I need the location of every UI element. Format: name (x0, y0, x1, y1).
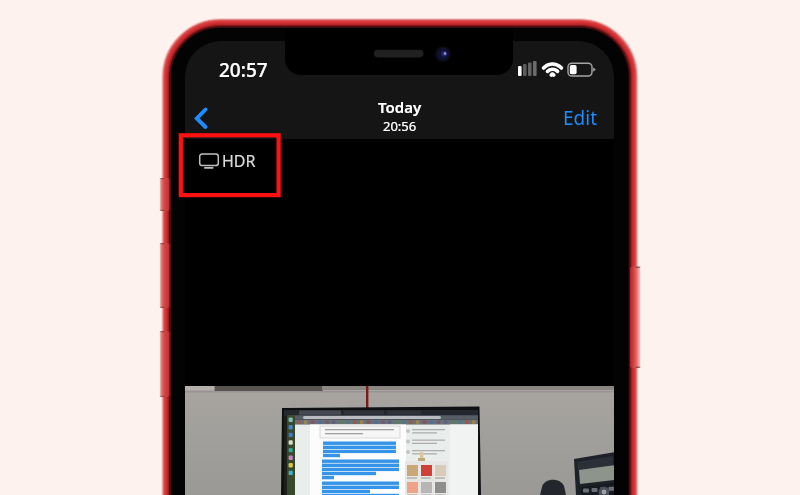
staticText: 20:56 (383, 117, 417, 135)
staticText: Today (378, 97, 422, 117)
button[interactable]: HDR (194, 148, 256, 174)
button[interactable]: Edit (556, 100, 604, 136)
staticText: 20:57 (219, 57, 268, 83)
staticText: HDR (222, 150, 256, 172)
staticText: Edit (563, 105, 598, 131)
button[interactable]: Back (188, 100, 222, 138)
